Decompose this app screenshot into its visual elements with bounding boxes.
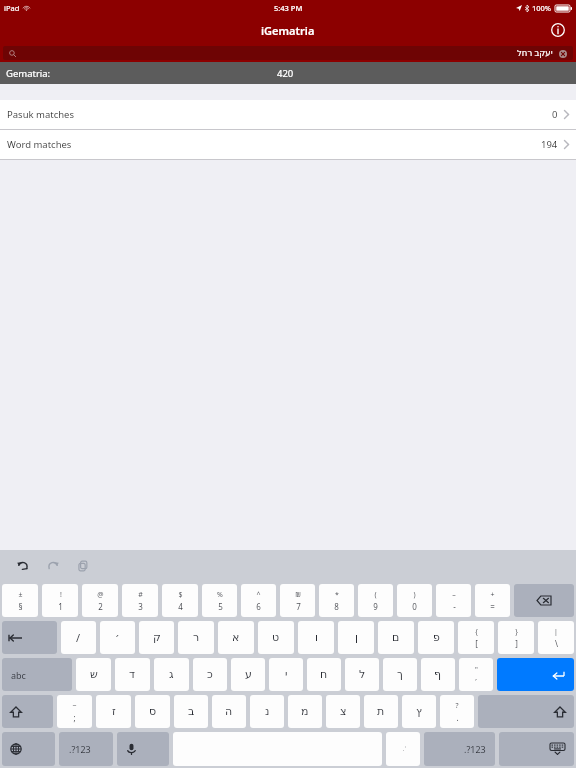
button[interactable] [2,621,57,654]
button[interactable]: ! [42,584,78,617]
button[interactable]: ה [212,695,246,728]
button[interactable]: ± [2,584,38,617]
staticText: 0 [412,601,417,612]
staticText: \ [555,638,558,649]
button[interactable]: ) [397,584,432,617]
button[interactable]: Shift [2,695,53,728]
button[interactable]: Redo [42,555,64,577]
other: Backspace [514,584,574,617]
button[interactable]: Pasuk matches [0,100,576,129]
button[interactable]: Change keyboard language [2,732,55,766]
button[interactable]: + [475,584,510,617]
staticText: 4 [178,601,183,612]
staticText: ) [413,590,416,600]
staticText: ז [112,705,116,718]
button[interactable]: ₪ [280,584,315,617]
button[interactable]: ג [154,658,189,691]
button[interactable]: Paste [72,555,94,577]
button[interactable]: % [202,584,237,617]
staticText: # [138,590,143,600]
staticText: פ [433,631,440,644]
button[interactable]: ץ [402,695,436,728]
staticText: ; [73,712,76,723]
button[interactable]: ׳ [100,621,135,654]
button[interactable]: ב [174,695,208,728]
button[interactable]: * [319,584,354,617]
staticText: 9 [373,601,378,612]
button[interactable]: ~ [57,695,92,728]
staticText: ~ [72,701,77,711]
staticText: 2 [98,601,103,612]
button[interactable]: ז [96,695,131,728]
button[interactable]: ^ [241,584,276,617]
staticText: 194 [541,138,558,151]
staticText: ה [225,705,233,718]
button[interactable]: פ [418,621,454,654]
button[interactable]: ? [440,695,474,728]
button[interactable]: Info [548,20,568,40]
staticText: 100% [532,3,552,13]
button[interactable]: " [459,658,493,691]
button[interactable]: צ [326,695,360,728]
button[interactable]: ר [178,621,214,654]
button[interactable]: ק [139,621,174,654]
button[interactable]: ף [421,658,455,691]
button[interactable]: ט [258,621,294,654]
staticText: צ [340,705,347,718]
staticText: ± [18,590,23,600]
button[interactable]: ש [76,658,111,691]
staticText: abc [11,669,26,681]
button[interactable]: ( [358,584,393,617]
staticText: = [490,601,495,612]
button[interactable]: @ [82,584,118,617]
staticText: ף [434,668,442,681]
button[interactable]: ך [383,658,417,691]
button[interactable]: Clear [557,48,568,59]
button[interactable]: נ [250,695,284,728]
button[interactable]: abc [2,658,72,691]
button[interactable]: .?123 [424,732,495,766]
button[interactable]: ם [378,621,414,654]
button[interactable]: .?123 [59,732,113,766]
staticText: Gematria: [6,67,51,80]
staticText: § [18,601,23,612]
button[interactable]: Dictate [117,732,169,766]
button[interactable]: ְ [386,732,420,766]
button[interactable]: ס [135,695,170,728]
staticText: .?123 [464,743,486,755]
button[interactable]: – [436,584,471,617]
button[interactable]: ו [298,621,334,654]
staticText: ש [90,668,98,681]
button[interactable]: י [269,658,303,691]
button[interactable]: | [538,621,574,654]
button[interactable]: ת [364,695,398,728]
staticText: ן [355,631,358,644]
button[interactable]: Hide keyboard [499,732,574,766]
button[interactable]: $ [162,584,198,617]
button[interactable]: { [458,621,494,654]
staticText: 8 [334,601,339,612]
button[interactable]: Backspace [514,584,574,617]
button[interactable]: א [218,621,254,654]
button[interactable]: ד [115,658,150,691]
button[interactable]: ל [345,658,379,691]
button[interactable]: Undo [12,555,34,577]
button[interactable]: } [498,621,534,654]
button[interactable]: ן [338,621,374,654]
button[interactable]: מ [288,695,322,728]
button[interactable]: ח [307,658,341,691]
button[interactable]: Shift [478,695,574,728]
staticText: ת [377,705,385,718]
button[interactable]: כ [193,658,227,691]
button[interactable]: Word matches [0,130,576,159]
button[interactable]: ע [231,658,265,691]
button[interactable]: יעקב רחל [3,46,573,60]
other: Shift [10,695,53,728]
button[interactable]: # [122,584,158,617]
staticText: ח [320,668,328,681]
button[interactable]: / [61,621,96,654]
button[interactable]: Return [497,658,574,691]
staticText: ו [315,631,318,644]
staticText: ם [392,631,400,644]
